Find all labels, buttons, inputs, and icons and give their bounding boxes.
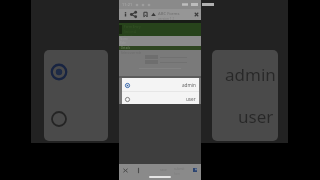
button[interactable]: admin selected [44,50,108,141]
other: user unselected [49,109,69,129]
staticText: admin [225,63,276,86]
staticText: user [238,105,274,128]
button[interactable]: Info [121,10,130,19]
staticText: user [186,96,196,102]
staticText: Details [121,46,130,50]
staticText: ABC Forms [158,11,180,17]
staticText: admin [182,82,196,88]
button[interactable]: Share [129,10,138,19]
button[interactable]: Close [193,11,200,18]
button[interactable]: user [122,94,199,104]
button[interactable]: admin [212,50,278,141]
button[interactable]: admin [122,80,199,90]
staticText: version 1.1 [158,17,175,21]
button[interactable]: Apps [192,167,198,173]
button[interactable]: Upload [149,10,158,19]
staticText: 11:21 [122,2,133,7]
button[interactable]: Edit [135,167,142,174]
other: admin selected [49,62,69,82]
button[interactable]: Close [122,167,129,174]
button[interactable]: Bookmark [141,10,150,19]
button[interactable]: save [160,168,167,172]
staticText: submit [174,167,185,171]
staticText: Part 2 [124,35,132,38]
